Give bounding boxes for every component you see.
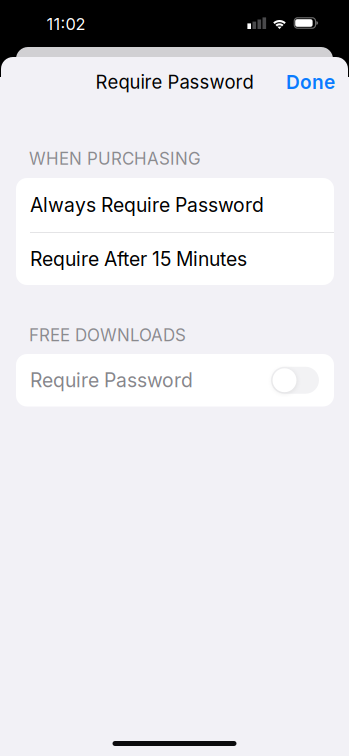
staticText: Require Password <box>95 71 253 93</box>
staticText: Done <box>286 70 335 94</box>
button[interactable]: Done <box>271 60 335 104</box>
button[interactable]: Require After 15 Minutes <box>16 233 334 285</box>
button[interactable]: Always Require Password <box>16 178 334 232</box>
button[interactable]: Require Password <box>16 354 334 406</box>
staticText: Require After 15 Minutes <box>30 247 247 271</box>
staticText: FREE DOWNLOADS <box>29 325 186 345</box>
staticText: 11:02 <box>46 14 85 34</box>
staticText: WHEN PURCHASING <box>29 148 201 169</box>
staticText: Require Password <box>30 369 193 392</box>
staticText: Always Require Password <box>30 193 264 217</box>
